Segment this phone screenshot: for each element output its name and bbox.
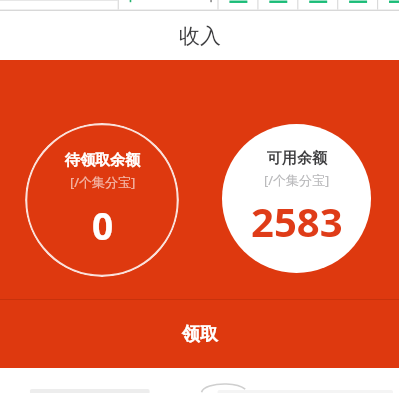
staticText: [/个集分宝] (264, 171, 330, 189)
button[interactable]: 可用余额 (222, 124, 371, 273)
staticText: 收入 (179, 23, 221, 49)
staticText: 0 (92, 200, 114, 250)
staticText: 待领取余额 (65, 151, 140, 170)
staticText: 可用余额 (267, 149, 327, 168)
button[interactable]: 待领取余额 (25, 123, 179, 277)
staticText: 2583 (251, 194, 343, 248)
staticText: 领取 (182, 323, 218, 346)
button[interactable]: 领取 (0, 300, 399, 368)
staticText: [/个集分宝] (70, 173, 136, 191)
